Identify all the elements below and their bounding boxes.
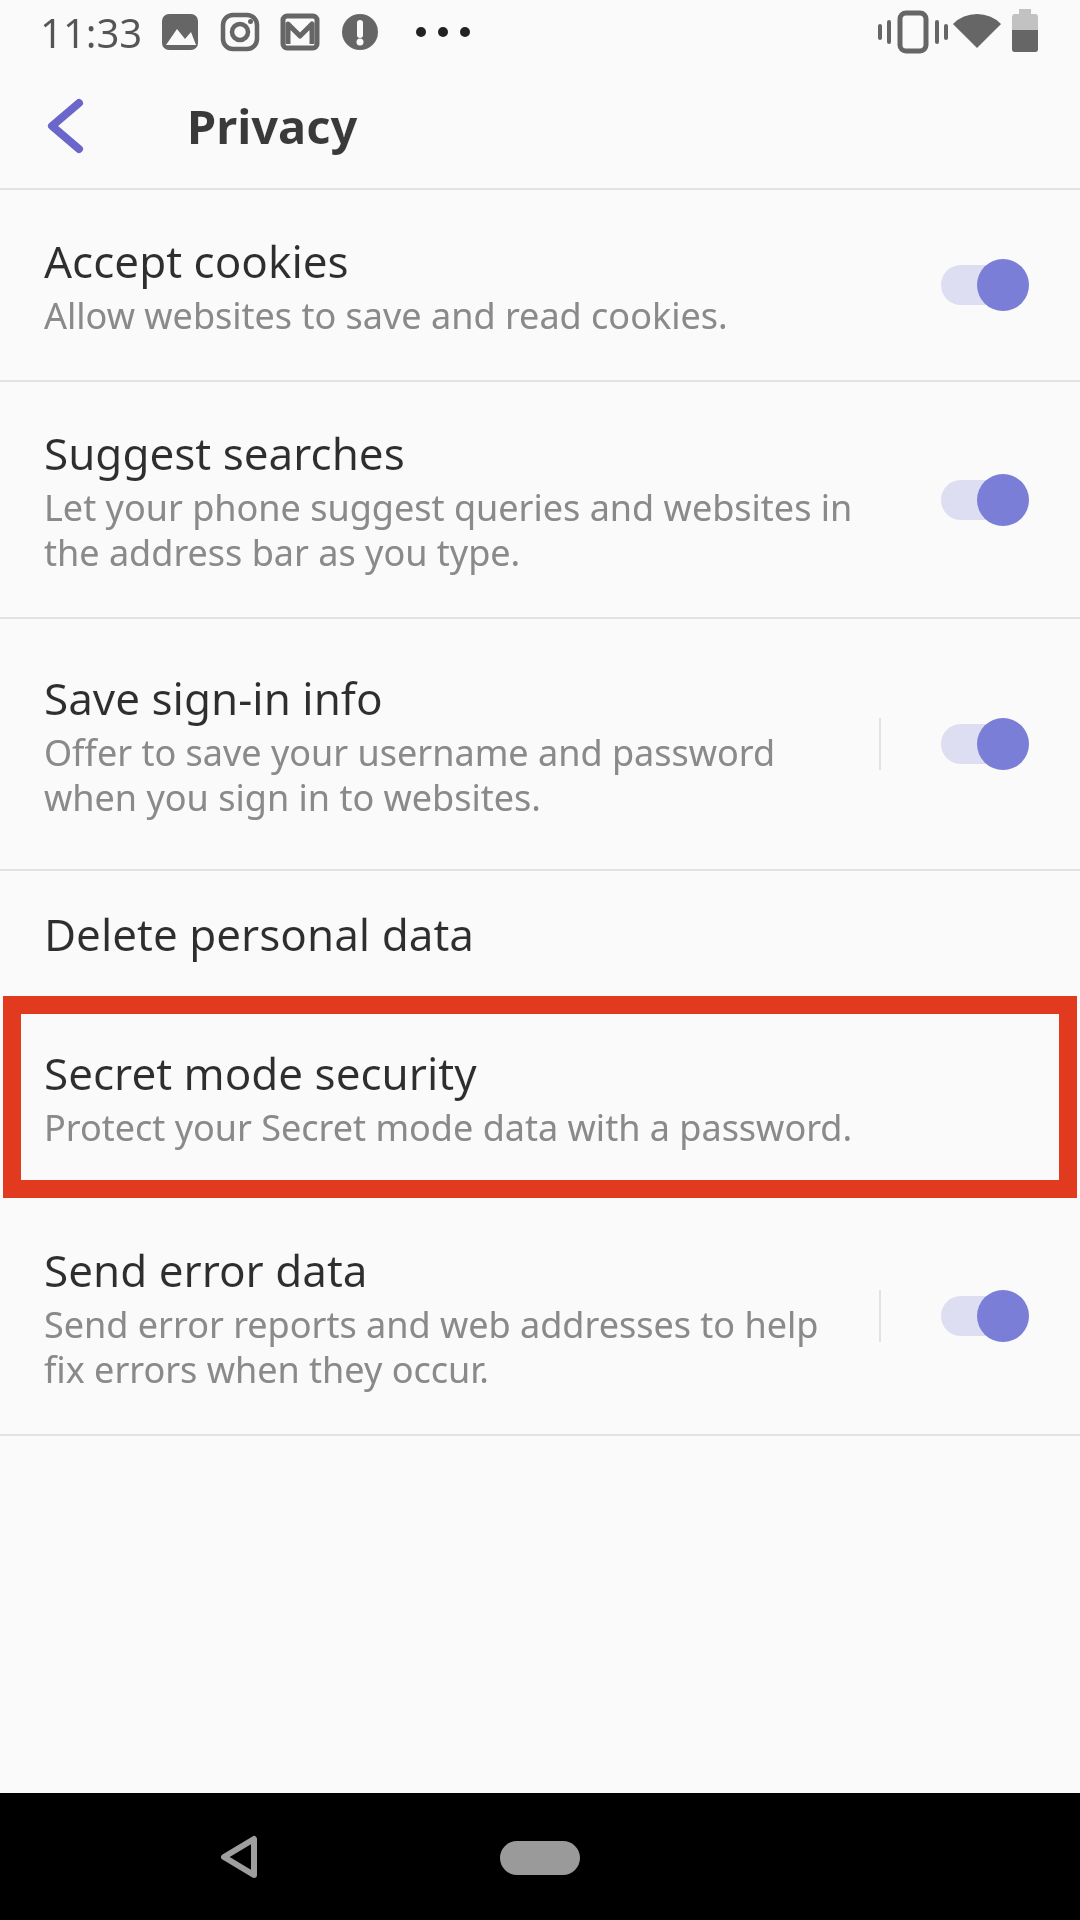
staticText: Secret mode security [44, 1043, 477, 1103]
staticText: Delete personal data [44, 904, 474, 964]
staticText: Suggest searches [44, 423, 405, 483]
staticText: Send error reports and web addresses to … [44, 1300, 819, 1393]
staticText: Offer to save your username and password… [44, 728, 776, 821]
button[interactable] [941, 257, 1029, 313]
button[interactable] [941, 1288, 1029, 1344]
button[interactable] [190, 1793, 290, 1920]
button[interactable]: Secret mode security [3, 996, 1077, 1198]
button[interactable] [480, 1793, 600, 1920]
button[interactable]: Delete personal data [0, 871, 1080, 996]
button[interactable]: Suggest searches [0, 382, 1080, 617]
button[interactable]: Accept cookies [0, 190, 1080, 380]
button[interactable] [941, 472, 1029, 528]
button[interactable]: Save sign-in info [0, 619, 1080, 869]
staticText: Privacy [187, 94, 358, 158]
staticText: Let your phone suggest queries and websi… [44, 483, 853, 576]
staticText: Accept cookies [44, 231, 349, 291]
button[interactable] [20, 86, 100, 166]
button[interactable]: Send error data [0, 1198, 1080, 1434]
staticText: 11:33 [40, 5, 143, 59]
staticText: Protect your Secret mode data with a pas… [44, 1103, 853, 1152]
staticText: Save sign-in info [44, 668, 383, 728]
button[interactable] [941, 716, 1029, 772]
staticText: Send error data [44, 1240, 368, 1300]
staticText: Allow websites to save and read cookies. [44, 291, 728, 340]
